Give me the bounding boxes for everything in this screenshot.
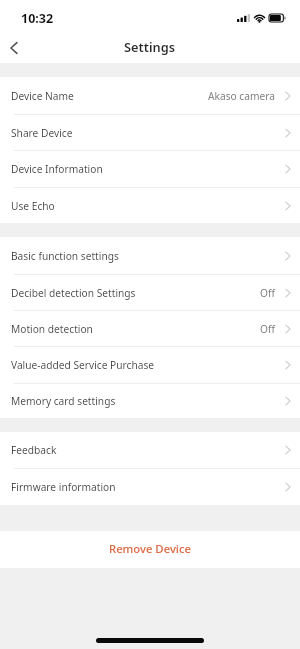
staticText: Decibel detection Settings: [11, 286, 136, 300]
staticText: Off: [260, 286, 275, 300]
button[interactable]: Firmware information: [0, 469, 300, 505]
button[interactable]: Device Information: [0, 151, 300, 187]
button[interactable]: Use Echo: [0, 188, 300, 223]
button[interactable]: Feedback: [0, 432, 300, 468]
button[interactable]: Memory card settings: [0, 384, 300, 418]
staticText: Settings: [124, 38, 176, 55]
staticText: Use Echo: [11, 199, 55, 213]
button[interactable]: Remove Device: [0, 531, 300, 568]
staticText: 10:32: [21, 10, 54, 27]
button[interactable]: Share Device: [0, 115, 300, 150]
staticText: Value-added Service Purchase: [11, 358, 155, 372]
staticText: Feedback: [11, 443, 57, 457]
staticText: Device Name: [11, 89, 74, 103]
staticText: Device Information: [11, 162, 103, 176]
staticText: Firmware information: [11, 480, 116, 494]
staticText: Akaso camera: [208, 89, 275, 103]
button[interactable]: Basic function settings: [0, 237, 300, 274]
staticText: Off: [260, 322, 275, 336]
staticText: Motion detection: [11, 322, 93, 336]
staticText: Basic function settings: [11, 249, 119, 263]
staticText: Memory card settings: [11, 394, 116, 408]
staticText: Share Device: [11, 126, 73, 140]
button[interactable]: Value-added Service Purchase: [0, 347, 300, 383]
button[interactable]: Device Name: [0, 77, 300, 114]
staticText: Remove Device: [109, 541, 191, 556]
button[interactable]: Decibel detection Settings: [0, 275, 300, 310]
button[interactable]: Back: [0, 33, 32, 63]
button[interactable]: Motion detection: [0, 311, 300, 346]
